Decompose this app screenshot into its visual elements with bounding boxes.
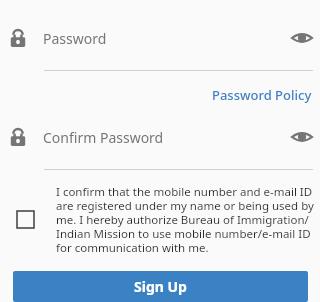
button[interactable]: Sign Up — [13, 271, 308, 302]
staticText: Password Policy — [212, 86, 312, 104]
staticText: I confirm that the mobile number and e-m… — [56, 184, 320, 255]
staticText: Sign Up — [134, 277, 187, 296]
staticText: Confirm Password — [43, 128, 284, 147]
button[interactable]: Show password — [284, 20, 320, 56]
button[interactable]: Show password — [284, 119, 320, 155]
other: Consent checkbox — [17, 211, 34, 228]
button[interactable]: Consent checkbox — [0, 184, 320, 255]
button[interactable]: Password Policy — [204, 84, 320, 106]
staticText: Password — [43, 29, 284, 48]
